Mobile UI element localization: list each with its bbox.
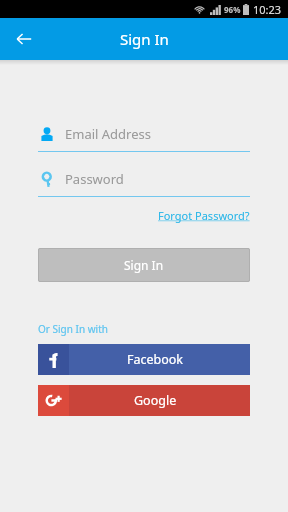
staticText: 96% (224, 4, 241, 15)
button[interactable]: Email Address (38, 122, 250, 152)
staticText: Password (65, 170, 124, 188)
staticText: Email Address (65, 125, 151, 143)
button[interactable]: Back (8, 23, 40, 55)
button[interactable]: Sign In (38, 248, 250, 282)
staticText: Or Sign In with (38, 322, 108, 336)
staticText: Forgot Password? (158, 208, 250, 223)
staticText: Sign In (120, 29, 169, 49)
button[interactable]: Password (38, 167, 250, 197)
button[interactable]: Forgot Password? (156, 205, 252, 226)
button[interactable]: Facebook (38, 344, 250, 375)
button[interactable]: Google (38, 385, 250, 416)
staticText: Google (134, 392, 177, 409)
staticText: Facebook (127, 351, 184, 368)
staticText: 10:23 (253, 2, 282, 17)
staticText: Sign In (124, 257, 164, 273)
